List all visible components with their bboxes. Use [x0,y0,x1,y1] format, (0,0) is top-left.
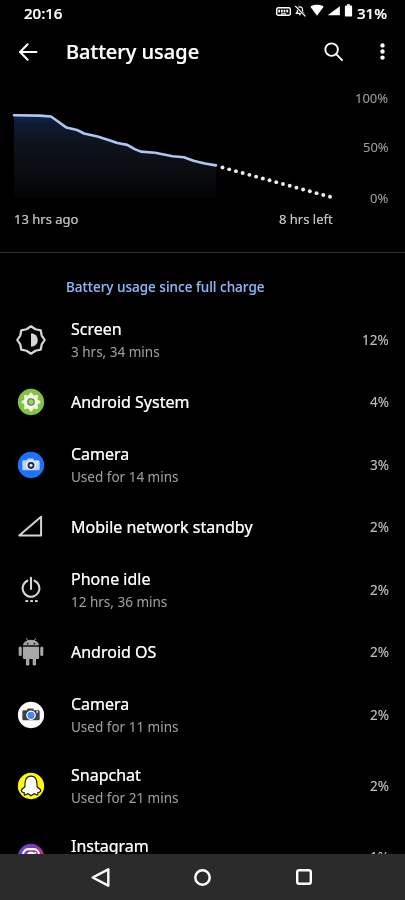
staticText: Phone idle [71,568,151,590]
staticText: Snapchat [71,764,141,786]
button[interactable]: Screen [0,304,405,375]
staticText: 13 hrs ago [14,210,79,228]
button[interactable]: Search [311,30,355,73]
staticText: Camera [71,693,130,715]
staticText: 1% [370,848,389,866]
staticText: 50% [363,138,389,156]
button[interactable]: Back [76,854,124,900]
button[interactable]: Phone idle [0,554,405,625]
button[interactable]: Instagram [0,821,405,892]
staticText: 0% [370,189,389,207]
staticText: Mobile network standby [71,516,253,538]
staticText: Screen [71,318,122,340]
button[interactable]: Battery usage since full charge [0,254,405,304]
staticText: Android System [71,391,190,413]
staticText: 12% [362,331,389,349]
staticText: Instagram [71,835,149,857]
staticText: Camera [71,443,130,465]
staticText: Battery usage [66,38,200,65]
staticText: 3% [370,456,389,474]
staticText: Used for 14 mins [71,468,179,486]
button[interactable]: Recent apps [280,854,328,900]
staticText: 4% [370,393,389,411]
button[interactable]: Back [6,30,50,73]
staticText: Used for 11 mins [71,718,179,736]
button[interactable]: Home [178,854,226,900]
button[interactable]: Mobile network standby [0,500,405,554]
button[interactable]: Android OS [0,625,405,679]
staticText: 8 hrs left [279,210,333,228]
staticText: Used for 21 mins [71,789,179,807]
staticText: 3 hrs, 34 mins [71,343,160,361]
staticText: 2% [370,777,389,795]
button[interactable]: Camera [0,679,405,750]
staticText: 20:16 [24,3,63,23]
staticText: 31% [357,3,387,23]
button[interactable]: Android System [0,375,405,429]
staticText: 100% [355,89,389,107]
staticText: 12 hrs, 36 mins [71,593,168,611]
staticText: Android OS [71,641,157,663]
staticText: 2% [370,706,389,724]
staticText: 2% [370,518,389,536]
staticText: Used for 9 mins [71,860,171,878]
button[interactable]: Snapchat [0,750,405,821]
staticText: 2% [370,643,389,661]
button[interactable]: More options [360,30,404,73]
button[interactable]: Camera [0,429,405,500]
staticText: 2% [370,581,389,599]
staticText: Battery usage since full charge [66,278,265,296]
